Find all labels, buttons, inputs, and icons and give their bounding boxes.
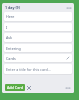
staticText: Enter a title for this card… bbox=[6, 67, 51, 72]
staticText: Cards bbox=[6, 56, 16, 61]
staticText: Here bbox=[6, 14, 15, 19]
staticText: Entering bbox=[6, 46, 21, 51]
staticText: Ask bbox=[6, 35, 13, 40]
button[interactable]: Entering bbox=[4, 44, 72, 52]
button[interactable]: More options bbox=[64, 85, 72, 91]
button[interactable]: Enter a title for this card… bbox=[4, 64, 72, 74]
staticText: I bbox=[6, 25, 8, 30]
button[interactable]: Here bbox=[4, 12, 72, 21]
button[interactable]: Close bbox=[26, 85, 32, 91]
button[interactable]: Cards bbox=[4, 54, 72, 62]
staticText: Add Card bbox=[7, 85, 23, 90]
button[interactable]: 1 day (9) bbox=[4, 3, 72, 12]
staticText: 1 day (9) bbox=[5, 5, 20, 10]
button[interactable]: Ask bbox=[4, 33, 72, 42]
button[interactable]: List menu bbox=[64, 4, 73, 12]
button[interactable]: I bbox=[4, 23, 72, 31]
button[interactable]: Add Card bbox=[5, 84, 25, 91]
